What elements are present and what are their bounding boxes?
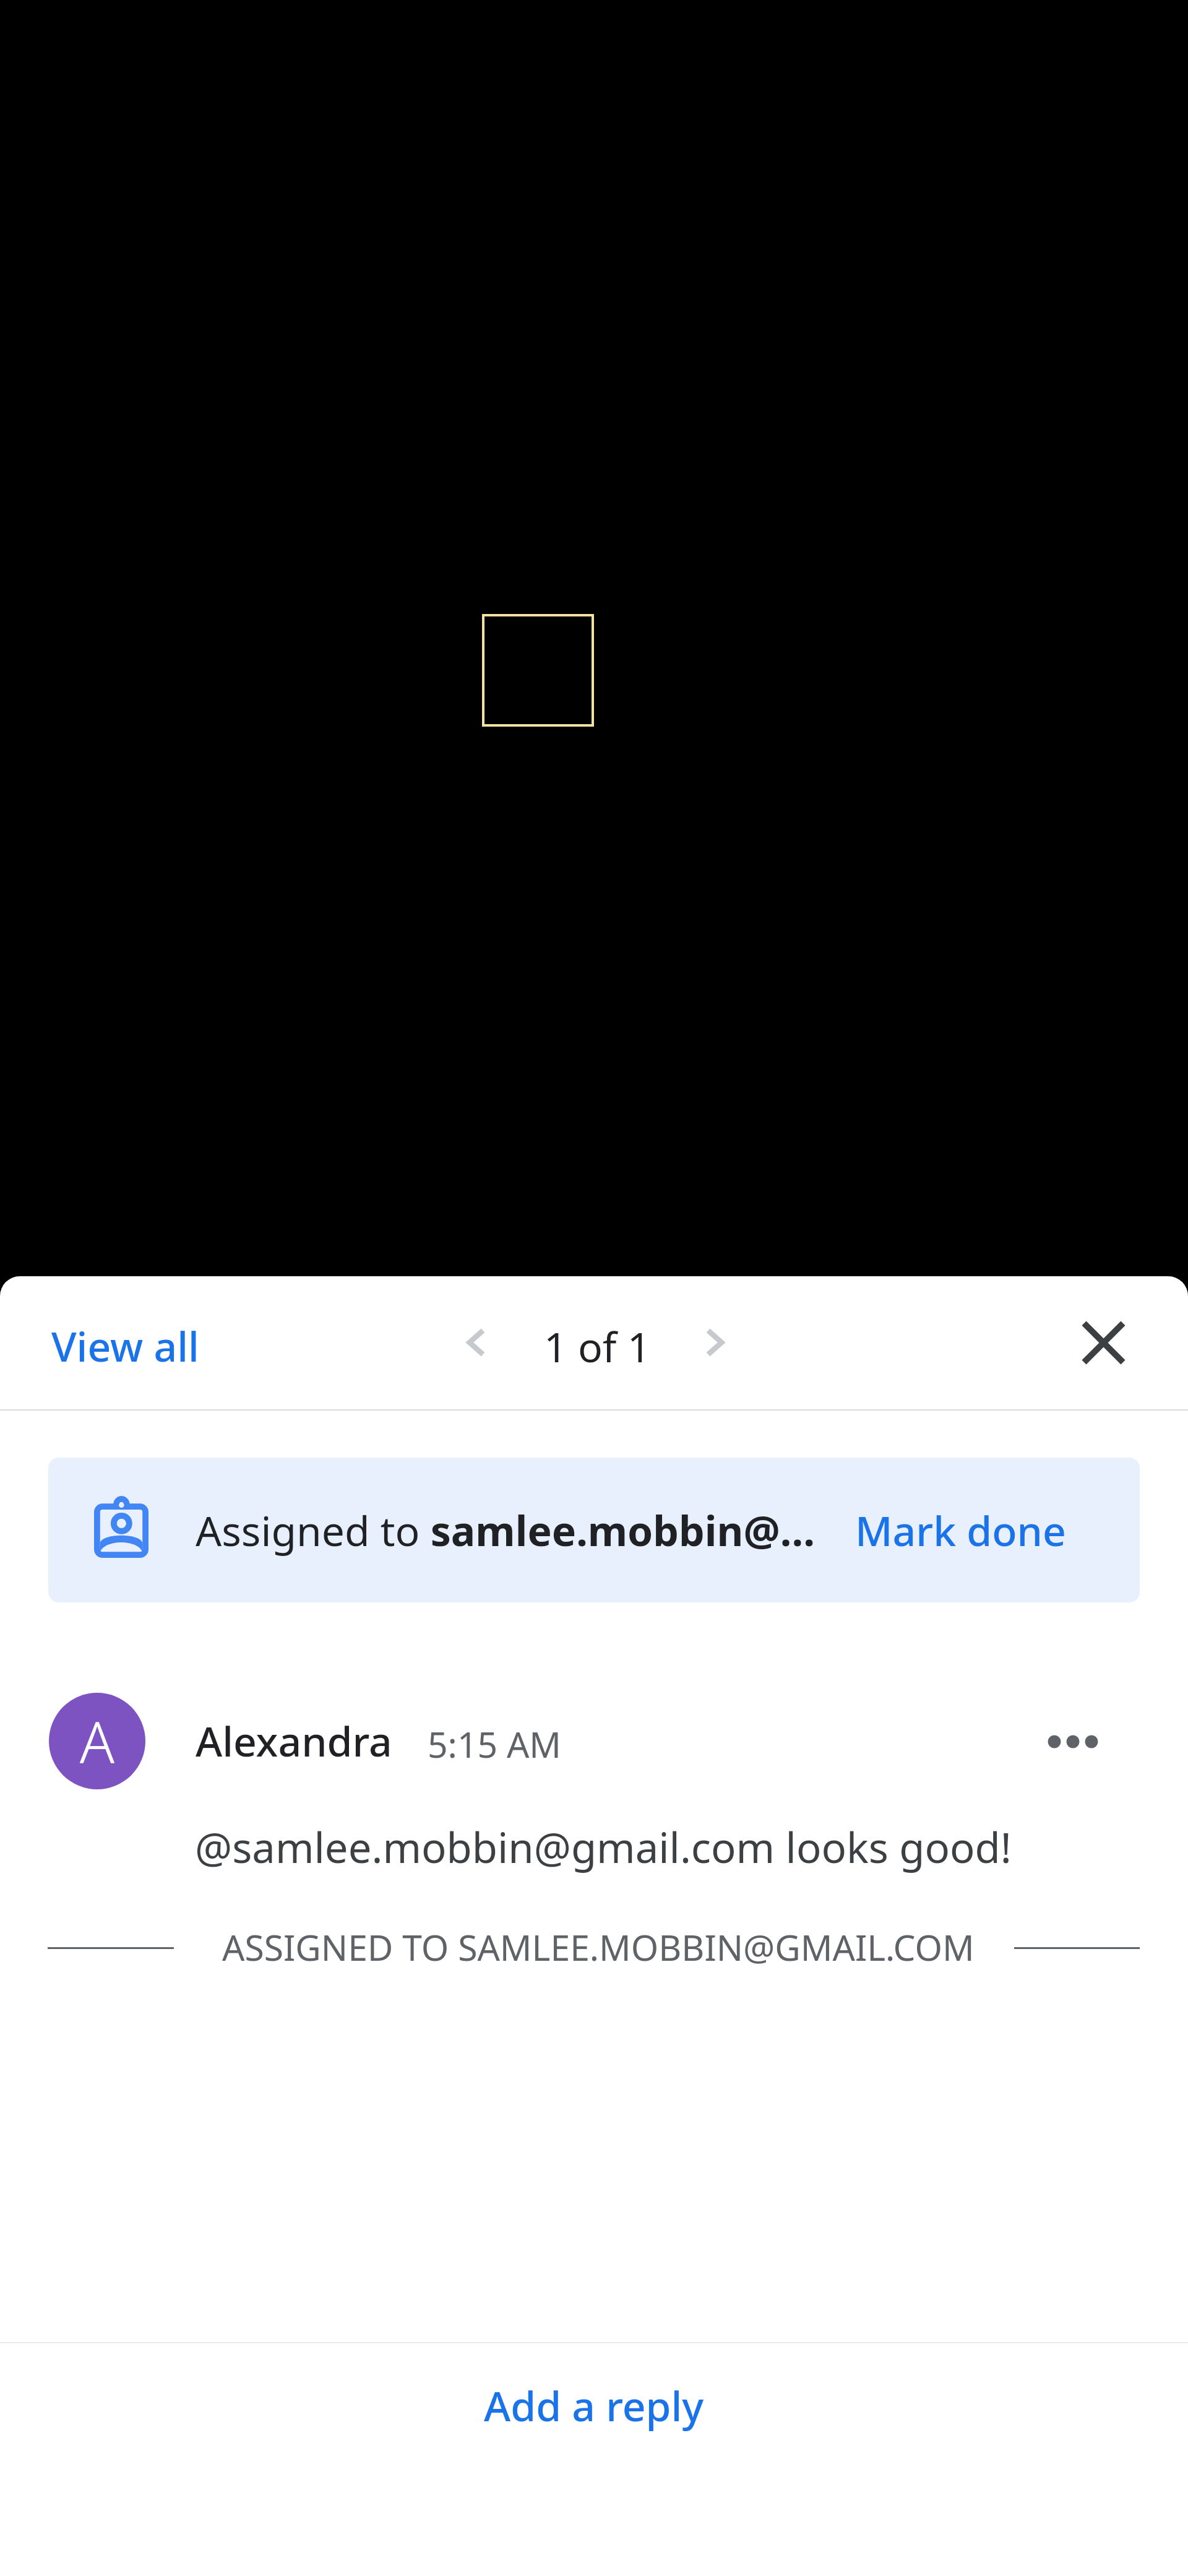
button[interactable]: Mark done [816,1493,1088,1567]
staticText: View all [51,1318,199,1373]
button[interactable]: Add a reply [464,2369,724,2442]
staticText: 1 of 1 [544,1318,651,1374]
button[interactable]: Close [1069,1308,1137,1377]
staticText: ASSIGNED TO SAMLEE.MOBBIN@GMAIL.COM [222,1923,975,1971]
staticText: A [80,1703,114,1780]
button[interactable]: Next comment [682,1308,751,1377]
staticText: 5:15 AM [428,1720,562,1768]
button[interactable]: More options [1039,1708,1107,1776]
button[interactable]: View all [33,1308,218,1383]
staticText: Assigned to samlee.mobbin@… [196,1502,816,1558]
staticText: Add a reply [484,2377,704,2433]
button[interactable]: Previous comment [441,1308,509,1377]
staticText: @samlee.mobbin@gmail.com looks good! [195,1818,1012,1875]
staticText: Mark done [855,1502,1066,1558]
staticText: Alexandra [196,1713,392,1768]
